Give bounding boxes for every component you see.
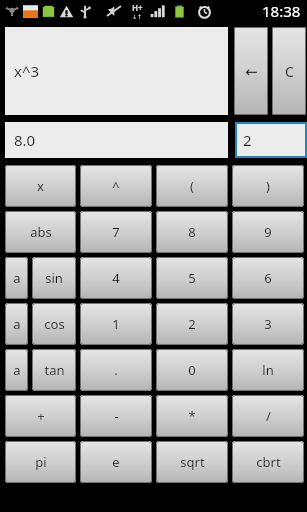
staticText: 18:38 xyxy=(262,1,301,21)
staticText: 8 xyxy=(188,223,196,241)
staticText: 8.0 xyxy=(14,130,36,150)
button[interactable]: 1 xyxy=(80,303,152,345)
button[interactable]: 6 xyxy=(232,257,304,299)
staticText: a xyxy=(13,361,21,379)
staticText: / xyxy=(266,407,271,425)
button[interactable]: 2 xyxy=(235,122,307,158)
staticText: 2 xyxy=(243,130,252,150)
staticText: ) xyxy=(266,177,270,195)
button[interactable]: 2 xyxy=(156,303,228,345)
button[interactable]: ln xyxy=(232,349,304,391)
button[interactable]: * xyxy=(156,395,228,437)
staticText: a xyxy=(13,315,21,333)
staticText: 1 xyxy=(112,315,120,333)
staticText: H+ xyxy=(132,2,143,13)
button[interactable]: 8.0 xyxy=(5,122,228,158)
staticText: - xyxy=(114,407,119,425)
button[interactable]: ^ xyxy=(80,165,152,207)
staticText: C xyxy=(285,62,294,81)
button[interactable]: x^3 xyxy=(5,27,228,115)
staticText: ← xyxy=(245,63,258,80)
staticText: sqrt xyxy=(180,453,205,471)
button[interactable]: x xyxy=(5,165,76,207)
button[interactable]: sqrt xyxy=(156,441,228,483)
staticText: cbrt xyxy=(256,453,281,471)
staticText: abs xyxy=(30,223,52,241)
button[interactable]: - xyxy=(80,395,152,437)
button[interactable]: abs xyxy=(5,211,76,253)
staticText: x xyxy=(37,177,44,195)
button[interactable]: pi xyxy=(5,441,76,483)
button[interactable]: ( xyxy=(156,165,228,207)
button[interactable]: a xyxy=(5,303,28,345)
staticText: 0 xyxy=(188,361,196,379)
staticText: tan xyxy=(44,361,65,379)
staticText: . xyxy=(114,361,118,379)
staticText: pi xyxy=(35,453,47,471)
staticText: 9 xyxy=(264,223,272,241)
button[interactable]: 8 xyxy=(156,211,228,253)
staticText: sin xyxy=(45,269,63,287)
staticText: ↓↑ xyxy=(132,13,143,20)
staticText: 5 xyxy=(188,269,196,287)
staticText: 7 xyxy=(112,223,120,241)
button[interactable]: + xyxy=(5,395,76,437)
staticText: x^3 xyxy=(14,61,40,81)
button[interactable]: cos xyxy=(32,303,76,345)
staticText: + xyxy=(37,407,45,425)
button[interactable]: 3 xyxy=(232,303,304,345)
button[interactable]: ) xyxy=(232,165,304,207)
staticText: cos xyxy=(44,315,65,333)
staticText: 6 xyxy=(264,269,272,287)
staticText: a xyxy=(13,269,21,287)
staticText: 2 xyxy=(188,315,196,333)
button[interactable]: 0 xyxy=(156,349,228,391)
staticText: 4 xyxy=(112,269,120,287)
button[interactable]: / xyxy=(232,395,304,437)
button[interactable]: sin xyxy=(32,257,76,299)
button[interactable]: e xyxy=(80,441,152,483)
button[interactable]: C xyxy=(272,27,306,115)
staticText: ( xyxy=(190,177,194,195)
button[interactable]: a xyxy=(5,257,28,299)
button[interactable]: 9 xyxy=(232,211,304,253)
button[interactable]: a xyxy=(5,349,28,391)
staticText: ^ xyxy=(112,177,120,195)
button[interactable]: 7 xyxy=(80,211,152,253)
button[interactable]: 5 xyxy=(156,257,228,299)
staticText: e xyxy=(112,453,120,471)
staticText: ln xyxy=(262,361,274,379)
staticText: 3 xyxy=(264,315,272,333)
button[interactable]: 4 xyxy=(80,257,152,299)
button[interactable]: Backspace xyxy=(234,27,268,115)
staticText: * xyxy=(188,407,196,425)
button[interactable]: . xyxy=(80,349,152,391)
button[interactable]: tan xyxy=(32,349,76,391)
button[interactable]: cbrt xyxy=(232,441,304,483)
